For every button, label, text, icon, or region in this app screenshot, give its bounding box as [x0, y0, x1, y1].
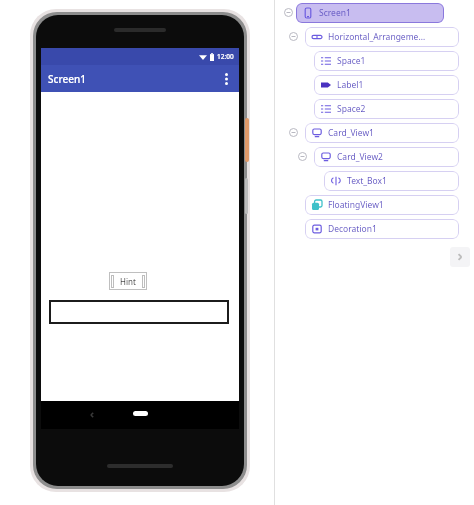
staticText: Screen1 — [319, 7, 351, 19]
staticText: Space2 — [337, 103, 366, 115]
button[interactable]: Decoration1 — [305, 219, 459, 239]
button[interactable]: Text_Box1 — [324, 171, 459, 191]
button[interactable]: Collapse Card_View2 — [297, 151, 308, 162]
button[interactable]: Screen1 — [296, 3, 444, 23]
staticText: Screen1 — [48, 72, 86, 86]
staticText: Card_View1 — [328, 127, 374, 139]
staticText: Card_View2 — [337, 151, 383, 163]
button[interactable]: Home — [133, 411, 148, 416]
button[interactable]: Card_View1 — [305, 123, 459, 143]
staticText: FloatingView1 — [328, 199, 384, 211]
button[interactable]: Back — [85, 408, 99, 422]
button[interactable]: Collapse Card_View1 — [288, 127, 299, 138]
staticText: Text_Box1 — [347, 175, 387, 187]
button[interactable]: Collapse Horizontal_Arrangeme… — [288, 31, 299, 42]
button[interactable]: Expand panel — [450, 247, 470, 267]
button[interactable]: Space1 — [314, 51, 459, 71]
button[interactable] — [49, 300, 229, 324]
staticText: Space1 — [337, 55, 366, 67]
button[interactable]: More options — [218, 71, 234, 87]
button[interactable]: Card_View2 — [314, 147, 459, 167]
button[interactable]: Label1 — [314, 75, 459, 95]
staticText: 12:00 — [217, 52, 234, 61]
button[interactable]: Collapse Screen1 — [283, 7, 294, 18]
button[interactable]: Space2 — [314, 99, 459, 119]
staticText: Label1 — [337, 79, 364, 91]
button[interactable]: FloatingView1 — [305, 195, 459, 215]
button[interactable]: Hint — [109, 272, 147, 290]
staticText: Horizontal_Arrangeme… — [328, 31, 426, 43]
button[interactable]: Horizontal_Arrangeme… — [305, 27, 459, 47]
staticText: Decoration1 — [328, 223, 377, 235]
staticText: Hint — [120, 276, 136, 287]
